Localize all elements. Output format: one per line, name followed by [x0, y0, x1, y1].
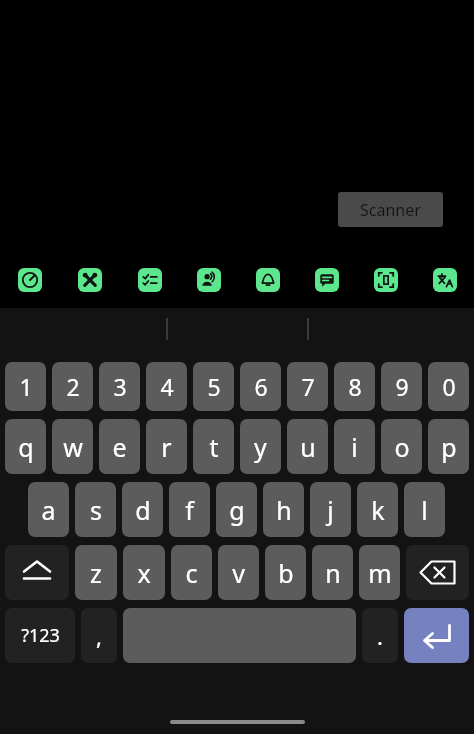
button[interactable]: v [218, 545, 259, 600]
button[interactable]: q [5, 419, 46, 474]
button[interactable]: d [122, 482, 163, 537]
button[interactable]: a [28, 482, 69, 537]
staticText: f [185, 493, 194, 527]
button[interactable]: h [263, 482, 304, 537]
button[interactable]: c [171, 545, 212, 600]
button[interactable]: Scanner [374, 268, 398, 292]
button[interactable]: 3 [99, 362, 140, 411]
staticText: c [185, 556, 198, 590]
button[interactable] [123, 608, 356, 663]
staticText: o [394, 430, 410, 464]
button[interactable]: 1 [5, 362, 46, 411]
staticText: u [300, 430, 316, 464]
staticText: r [161, 430, 172, 464]
staticText: x [137, 556, 151, 590]
button[interactable]: Notifications [256, 268, 280, 292]
button[interactable]: , [81, 608, 117, 663]
button[interactable]: 8 [334, 362, 375, 411]
button[interactable]: k [357, 482, 398, 537]
staticText: ?123 [21, 623, 60, 648]
staticText: 7 [301, 371, 315, 402]
button[interactable]: p [428, 419, 469, 474]
staticText: 9 [395, 371, 409, 402]
button[interactable]: l [404, 482, 445, 537]
staticText: e [112, 430, 127, 464]
staticText: z [90, 556, 102, 590]
button[interactable]: o [381, 419, 422, 474]
staticText: y [254, 430, 267, 464]
button[interactable]: e [99, 419, 140, 474]
staticText: m [368, 556, 392, 590]
button[interactable]: z [75, 545, 117, 600]
staticText: l [421, 493, 428, 527]
button[interactable]: w [52, 419, 93, 474]
staticText: n [325, 556, 341, 590]
staticText: g [229, 493, 245, 527]
staticText: . [377, 621, 383, 651]
staticText: p [441, 430, 457, 464]
button[interactable]: i [334, 419, 375, 474]
button[interactable]: ?123 [5, 608, 75, 663]
staticText: 5 [207, 371, 221, 402]
button[interactable]: y [240, 419, 281, 474]
staticText: k [371, 493, 385, 527]
staticText: j [327, 493, 334, 527]
button[interactable]: Tools [78, 268, 102, 292]
button[interactable]: 0 [428, 362, 469, 411]
button[interactable]: t [193, 419, 234, 474]
button[interactable]: s [75, 482, 116, 537]
staticText: 1 [19, 371, 33, 402]
button[interactable]: 2 [52, 362, 93, 411]
button[interactable]: . [362, 608, 398, 663]
staticText: i [351, 430, 358, 464]
button[interactable]: n [312, 545, 353, 600]
button[interactable]: r [146, 419, 187, 474]
staticText: v [232, 556, 245, 590]
button[interactable]: u [287, 419, 328, 474]
staticText: 0 [442, 371, 456, 402]
button[interactable]: g [216, 482, 257, 537]
button[interactable]: 6 [240, 362, 281, 411]
staticText: s [90, 493, 102, 527]
button[interactable]: x [123, 545, 165, 600]
button[interactable]: f [169, 482, 210, 537]
staticText: Scanner [360, 199, 421, 221]
staticText: b [278, 556, 294, 590]
button[interactable]: m [359, 545, 400, 600]
button[interactable]: Translate [433, 268, 457, 292]
button[interactable]: Enter [404, 608, 469, 663]
staticText: , [96, 621, 102, 651]
staticText: 8 [348, 371, 362, 402]
staticText: w [63, 430, 83, 464]
staticText: q [18, 430, 34, 464]
button[interactable]: Scanner [338, 192, 443, 227]
button[interactable]: j [310, 482, 351, 537]
button[interactable]: Messages [315, 268, 339, 292]
button[interactable]: 9 [381, 362, 422, 411]
button[interactable]: 7 [287, 362, 328, 411]
staticText: 3 [113, 371, 127, 402]
button[interactable]: Checklist [138, 268, 162, 292]
button[interactable]: Contact [197, 268, 221, 292]
staticText: d [135, 493, 151, 527]
staticText: 6 [254, 371, 268, 402]
button[interactable]: Speedometer [18, 268, 42, 292]
staticText: t [209, 430, 219, 464]
staticText: h [276, 493, 292, 527]
button[interactable]: Backspace [406, 545, 469, 600]
button[interactable]: b [265, 545, 306, 600]
staticText: 2 [66, 371, 80, 402]
button[interactable]: 5 [193, 362, 234, 411]
button[interactable]: Shift [5, 545, 69, 600]
button[interactable]: 4 [146, 362, 187, 411]
staticText: 4 [160, 371, 174, 402]
staticText: a [41, 493, 56, 527]
